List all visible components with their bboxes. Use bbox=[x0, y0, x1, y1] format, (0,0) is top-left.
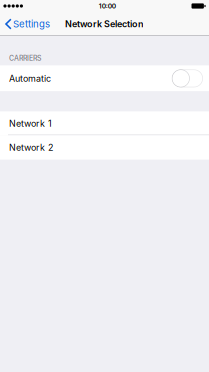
staticText: Network 1 bbox=[9, 118, 52, 129]
staticText: Network 2 bbox=[9, 142, 53, 153]
staticText: Network Selection bbox=[65, 18, 144, 29]
staticText: Settings bbox=[13, 18, 50, 30]
staticText: 10:00 bbox=[99, 2, 116, 10]
staticText: CARRIERS bbox=[9, 54, 41, 62]
staticText: Automatic bbox=[9, 73, 51, 84]
button[interactable]: Network 1 bbox=[0, 111, 209, 135]
button[interactable]: Automatic bbox=[0, 65, 209, 91]
button[interactable]: Network 2 bbox=[0, 135, 209, 159]
button[interactable]: Settings bbox=[0, 13, 56, 34]
